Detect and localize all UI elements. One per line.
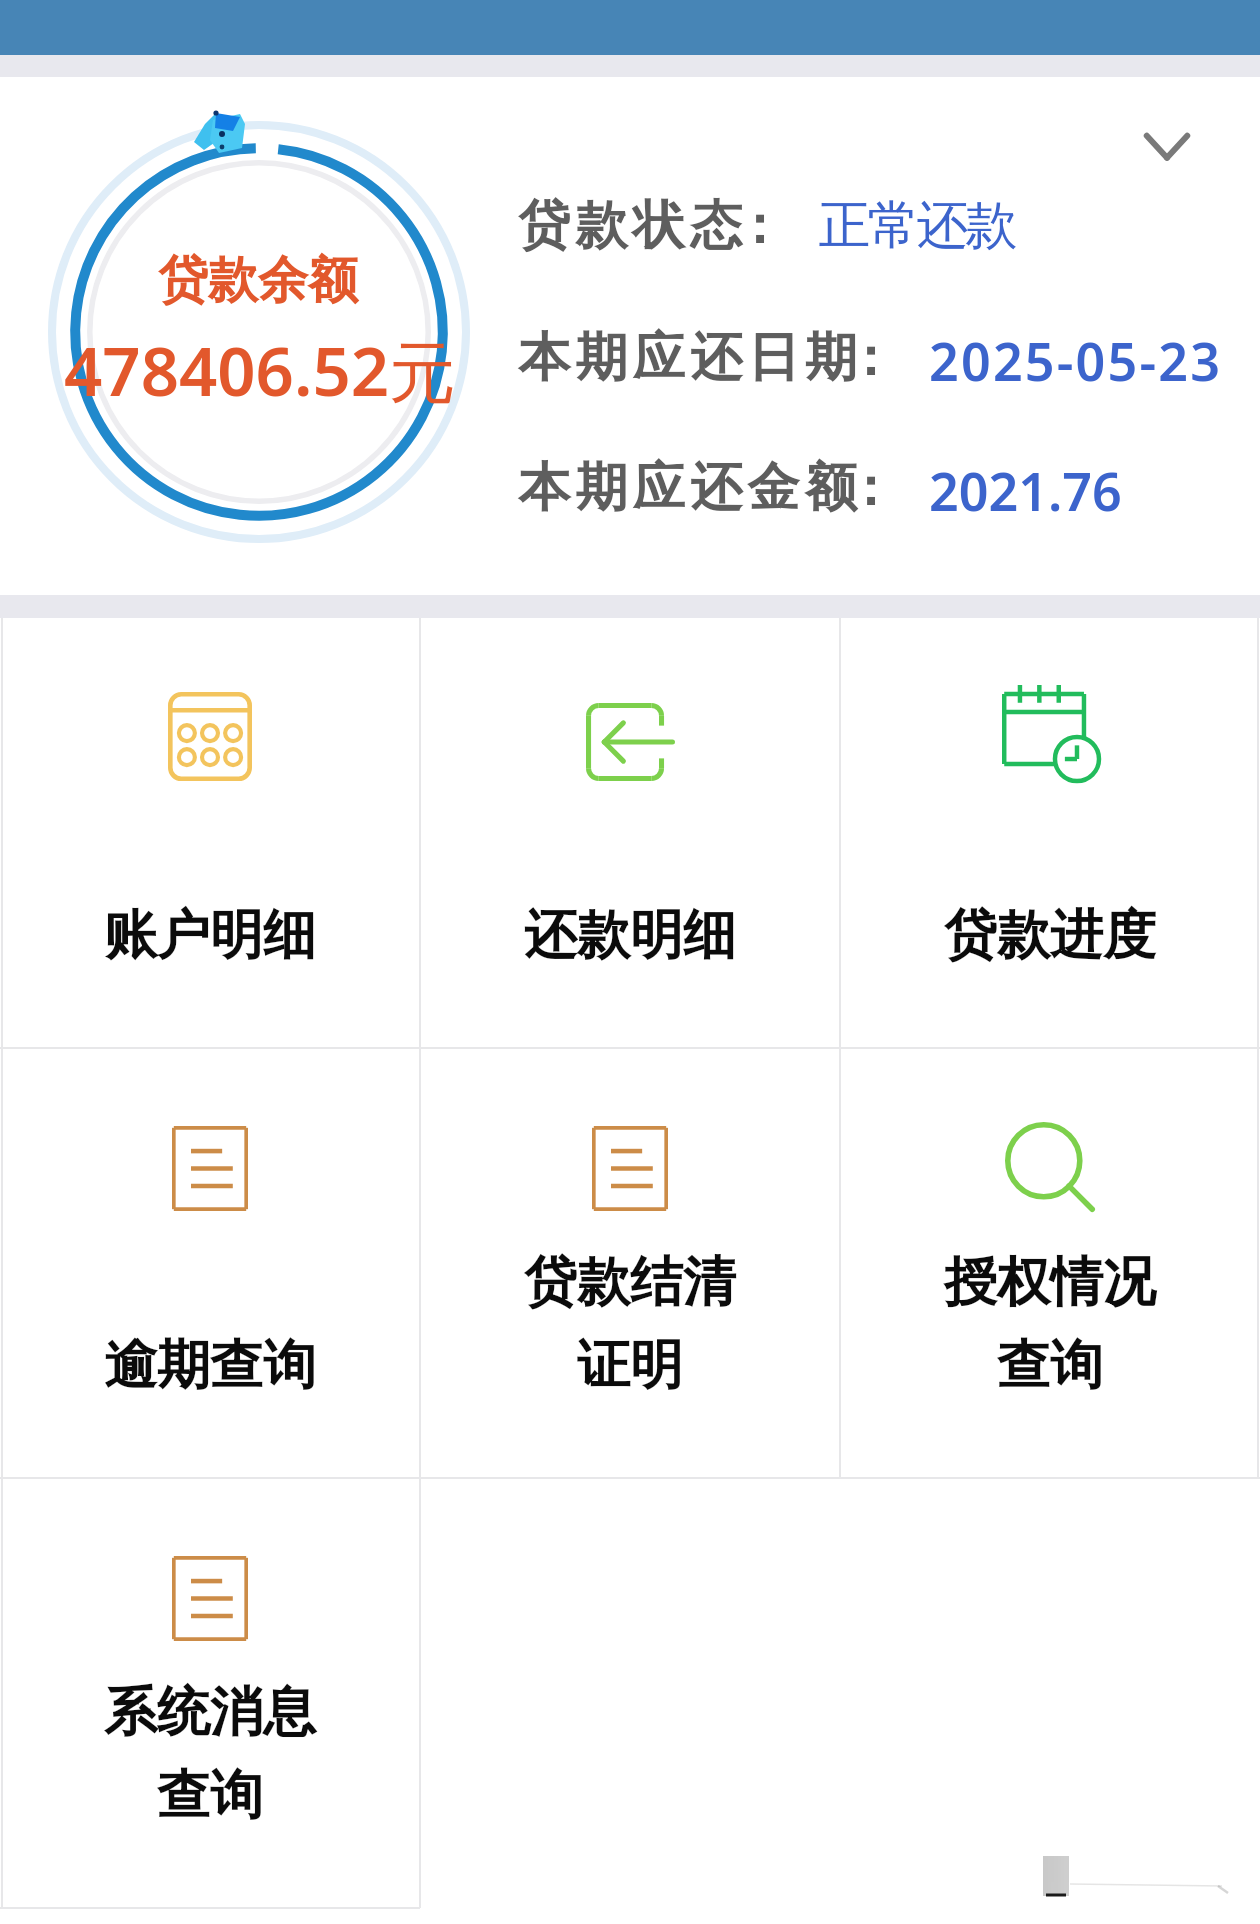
staticText: 账户明细 [0,902,420,969]
staticText: 贷款状态 [518,193,748,259]
staticText: ： [844,455,896,521]
staticText: 2025-05-23 [929,325,1223,396]
button[interactable]: 还款明细 [420,618,840,1046]
button[interactable]: 贷款进度 [840,618,1260,1046]
staticText: 贷款余额 [158,249,358,312]
button[interactable]: 授权情况 查询 [840,1048,1260,1476]
button[interactable]: Expand details [1112,89,1222,199]
staticText: 还款明细 [420,902,840,969]
button[interactable]: 系统消息 查询 [0,1478,420,1906]
staticText: 贷款结清 证明 [420,1249,840,1399]
staticText: ： [733,193,785,259]
staticText: 478406.52元 [64,324,457,416]
button[interactable]: 账户明细 [0,618,420,1046]
button[interactable]: 贷款结清 证明 [420,1048,840,1476]
staticText: 正常还款 [820,193,1016,259]
staticText: 贷款进度 [840,902,1260,969]
staticText: 授权情况 查询 [840,1249,1260,1399]
staticText: 本期应还日期 [518,325,863,391]
staticText: ： [844,325,896,391]
staticText: 系统消息 查询 [0,1679,420,1829]
staticText: 本期应还金额 [518,455,863,521]
staticText: 逾期查询 [0,1332,420,1399]
button[interactable]: 逾期查询 [0,1048,420,1476]
staticText: 2021.76 [929,455,1122,526]
